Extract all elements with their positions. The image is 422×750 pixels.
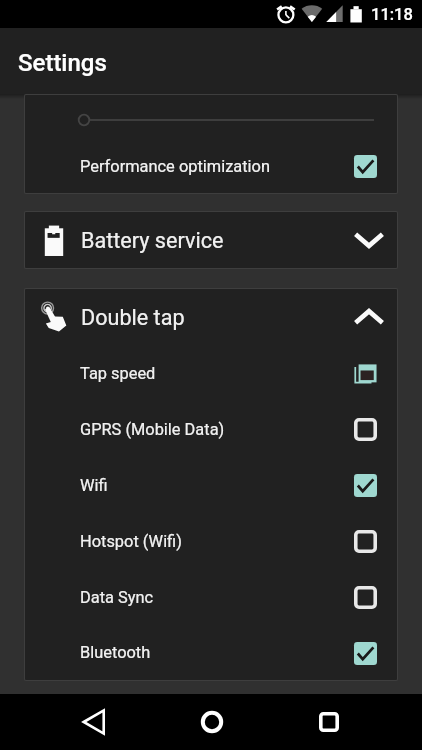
staticText: 11:18 <box>371 5 413 24</box>
button[interactable]: Battery service <box>25 212 397 268</box>
staticText: Bluetooth <box>80 643 151 662</box>
staticText: Double tap <box>81 305 185 330</box>
staticText: Tap speed <box>80 364 156 383</box>
button[interactable]: Wifi <box>25 457 397 513</box>
staticText: Wifi <box>80 476 108 495</box>
button[interactable]: Tap speed <box>25 345 397 401</box>
button[interactable]: Data Sync <box>25 569 397 625</box>
staticText: Battery service <box>81 228 224 253</box>
button[interactable]: GPRS (Mobile Data) <box>25 401 397 457</box>
button[interactable]: Home <box>176 694 248 750</box>
staticText: Hotspot (Wifi) <box>80 532 182 551</box>
other: Expand <box>347 218 391 262</box>
button[interactable]: Double tap <box>25 289 397 345</box>
button[interactable]: Performance optimization <box>25 138 397 193</box>
button[interactable]: Bluetooth <box>25 625 397 680</box>
staticText: Settings <box>18 49 107 77</box>
other: Collapse <box>347 295 391 339</box>
button[interactable]: Back <box>59 694 131 750</box>
button[interactable]: Hotspot (Wifi) <box>25 513 397 569</box>
staticText: Data Sync <box>80 588 154 607</box>
button[interactable]: Recent apps <box>293 694 365 750</box>
staticText: Performance optimization <box>80 157 270 176</box>
staticText: GPRS (Mobile Data) <box>80 420 225 439</box>
